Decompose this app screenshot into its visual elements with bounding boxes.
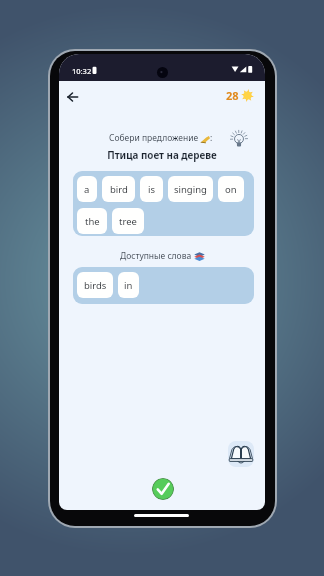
staticText: on — [225, 183, 237, 196]
button[interactable]: the — [77, 208, 107, 234]
button[interactable]: Hint — [228, 125, 250, 152]
staticText: singing — [174, 183, 207, 196]
button[interactable]: singing — [168, 176, 213, 202]
staticText: 28 — [226, 88, 239, 103]
button[interactable]: Dictionary — [228, 441, 254, 467]
button[interactable]: a — [77, 176, 97, 202]
staticText: in — [124, 279, 133, 292]
staticText: tree — [119, 215, 137, 228]
staticText: Доступные слова — [120, 250, 194, 262]
button[interactable]: Back — [61, 85, 84, 108]
button[interactable]: birds — [77, 272, 113, 298]
button[interactable]: bird — [102, 176, 135, 202]
staticText: : — [210, 132, 213, 144]
staticText: bird — [110, 183, 128, 196]
staticText: a — [84, 183, 90, 196]
button[interactable]: is — [140, 176, 163, 202]
button[interactable]: tree — [112, 208, 144, 234]
staticText: birds — [84, 279, 107, 292]
button[interactable]: on — [218, 176, 244, 202]
staticText: the — [85, 215, 100, 228]
button[interactable]: in — [118, 272, 139, 298]
button[interactable]: 28 — [226, 85, 254, 105]
staticText: 10:32 — [72, 66, 92, 76]
staticText: is — [148, 183, 156, 196]
staticText: Собери предложение — [109, 132, 201, 144]
button[interactable]: Check answer — [152, 478, 174, 500]
staticText: Птица поет на дереве — [59, 149, 265, 162]
